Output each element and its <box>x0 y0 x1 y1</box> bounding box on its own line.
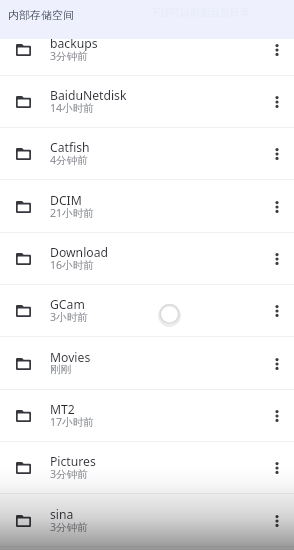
staticText: Catfish <box>50 139 90 156</box>
staticText: Movies <box>50 349 91 366</box>
staticText: 3小时前 <box>50 310 88 324</box>
staticText: sina <box>50 506 74 523</box>
button[interactable]: DCIM <box>0 181 294 233</box>
staticText: 4分钟前 <box>50 153 88 167</box>
button[interactable]: Pictures <box>0 442 294 494</box>
button[interactable]: MT2 <box>0 390 294 442</box>
staticText: 3分钟前 <box>50 49 88 63</box>
button[interactable]: More options for MT2 <box>260 399 294 433</box>
button[interactable]: backups <box>0 24 294 76</box>
staticText: MT2 <box>50 401 75 418</box>
button[interactable]: More options for backups <box>260 33 294 67</box>
staticText: 刚刚 <box>50 363 72 376</box>
staticText: 3分钟前 <box>50 520 88 534</box>
button[interactable]: Movies <box>0 338 294 390</box>
staticText: 17小时前 <box>50 415 94 429</box>
button[interactable]: More options for sina <box>260 504 294 538</box>
staticText: Pictures <box>50 453 96 470</box>
button[interactable]: More options for Catfish <box>260 137 294 171</box>
button[interactable]: More options for Download <box>260 242 294 276</box>
staticText: 3分钟前 <box>50 467 88 481</box>
button[interactable]: More options for Pictures <box>260 451 294 485</box>
button[interactable]: More options for GCam <box>260 294 294 328</box>
staticText: Download <box>50 244 108 261</box>
staticText: BaiduNetdisk <box>50 87 127 104</box>
button[interactable]: More options for DCIM <box>260 190 294 224</box>
button[interactable]: GCam <box>0 285 294 337</box>
staticText: DCIM <box>50 192 82 209</box>
button[interactable]: sina <box>0 495 294 547</box>
staticText: 14小时前 <box>50 101 94 115</box>
button[interactable]: Download <box>0 233 294 285</box>
staticText: GCam <box>50 296 85 313</box>
staticText: backups <box>50 35 98 52</box>
button[interactable]: More options for Movies <box>260 347 294 381</box>
staticText: 21小时前 <box>50 206 94 220</box>
staticText: 内部存储空间 <box>8 8 74 22</box>
button[interactable]: Catfish <box>0 128 294 180</box>
staticText: 16小时前 <box>50 258 94 272</box>
button[interactable]: More options for BaiduNetdisk <box>260 85 294 119</box>
button[interactable]: BaiduNetdisk <box>0 76 294 128</box>
